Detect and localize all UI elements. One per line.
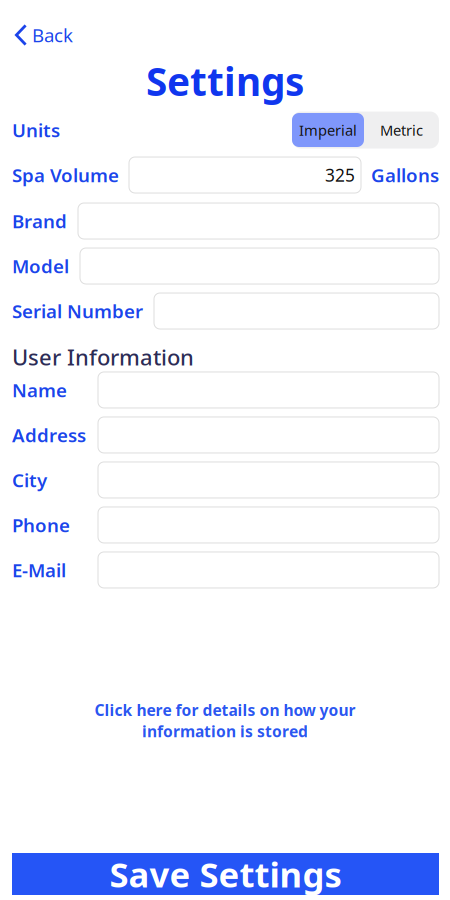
button[interactable]: Save Settings: [12, 853, 439, 895]
button[interactable]: Imperial: [292, 113, 364, 147]
staticText: Brand: [12, 209, 67, 233]
button[interactable]: Metric: [364, 113, 439, 147]
staticText: Save Settings: [109, 851, 341, 897]
staticText: Spa Volume: [12, 163, 119, 187]
staticText: Address: [12, 423, 86, 447]
staticText: 325: [325, 163, 355, 186]
staticText: Metric: [380, 120, 423, 140]
button[interactable]: Back: [0, 23, 450, 47]
staticText: Model: [12, 254, 69, 278]
staticText: Serial Number: [12, 299, 143, 323]
staticText: Settings: [146, 55, 304, 107]
staticText: Imperial: [299, 120, 357, 140]
staticText: Gallons: [371, 163, 439, 187]
staticText: Phone: [12, 513, 70, 537]
staticText: E-Mail: [12, 558, 66, 582]
staticText: Name: [12, 378, 67, 402]
staticText: Click here for details on how your: [94, 699, 355, 720]
staticText: User Information: [12, 342, 194, 372]
staticText: information is stored: [142, 720, 308, 742]
staticText: Back: [32, 23, 73, 47]
staticText: Units: [12, 118, 60, 142]
button[interactable]: Click here for details on how your: [0, 691, 450, 750]
staticText: City: [12, 468, 47, 492]
